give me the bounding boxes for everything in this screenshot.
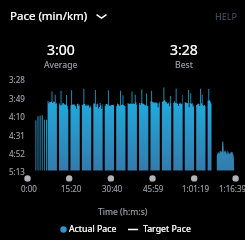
staticText: 5:13 (9, 166, 25, 177)
button[interactable]: Target Pace legend (128, 223, 190, 235)
staticText: 3:28 (170, 40, 198, 59)
staticText: 4:31 (9, 130, 25, 141)
staticText: Actual Pace (69, 223, 117, 235)
staticText: 3:28 (9, 74, 25, 85)
staticText: Average (44, 59, 78, 71)
staticText: 4:10 (9, 111, 25, 122)
staticText: 0:00 (21, 183, 37, 194)
staticText: 3:00 (47, 40, 75, 59)
staticText: 3:49 (9, 93, 25, 104)
button[interactable]: HELP (208, 5, 245, 27)
staticText: Pace (min/km) (10, 8, 88, 24)
button[interactable]: Pace (min/km) (8, 4, 110, 28)
staticText: 1:16:39 (219, 183, 245, 194)
staticText: Best (175, 59, 193, 71)
staticText: HELP (215, 10, 238, 22)
staticText: 1:01:19 (182, 183, 210, 194)
button[interactable]: Actual Pace legend (58, 223, 117, 235)
staticText: 30:40 (102, 183, 123, 194)
staticText: 15:20 (61, 183, 82, 194)
staticText: Target Pace (143, 223, 191, 235)
staticText: 45:59 (143, 183, 164, 194)
staticText: 4:52 (9, 148, 25, 159)
staticText: Time (h:m:s) (98, 206, 148, 218)
